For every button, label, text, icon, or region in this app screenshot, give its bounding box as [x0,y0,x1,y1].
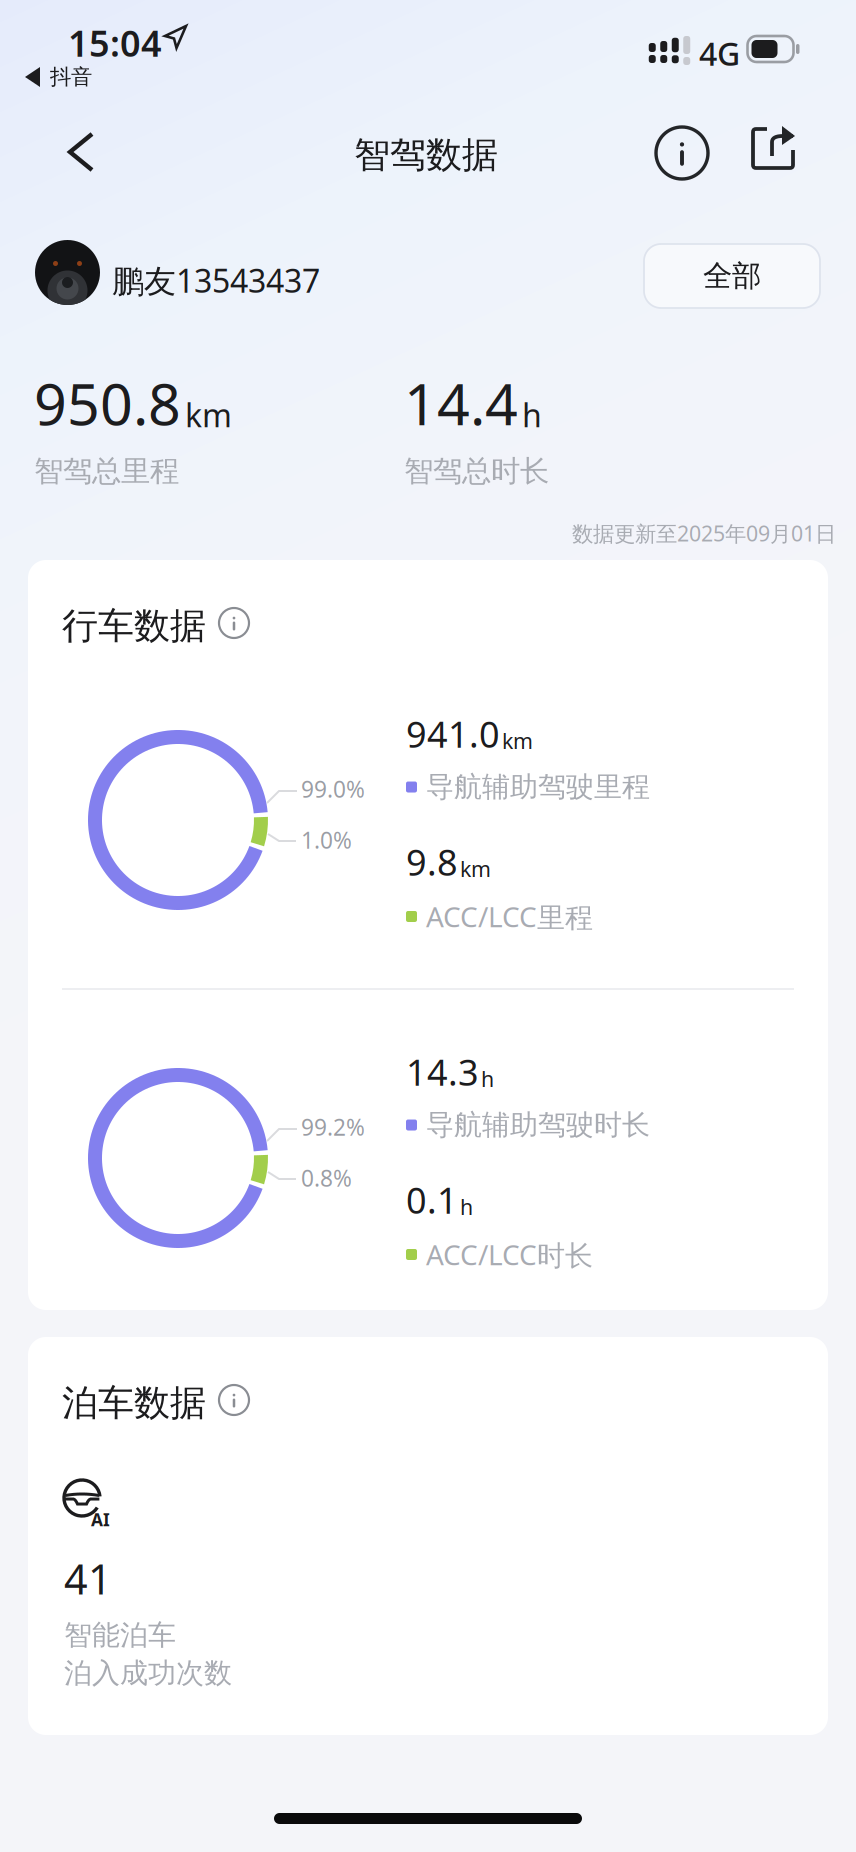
staticText: 0.1 [406,1176,458,1224]
staticText: 泊入成功次数 [64,1656,232,1690]
staticText: 0.8% [301,1163,352,1193]
staticText: 智驾总时长 [404,453,549,489]
staticText: 智驾总里程 [34,453,179,489]
staticText: km [460,854,491,883]
staticText: 行车数据 [62,604,206,648]
staticText: 全部 [703,258,761,294]
staticText: ACC/LCC时长 [426,1236,593,1273]
staticText: h [460,1192,473,1221]
staticText: h [522,394,542,436]
staticText: 99.0% [301,774,365,804]
button[interactable]: Info [641,110,723,196]
staticText: 抖音 [50,64,92,90]
button[interactable]: 全部 [644,244,820,308]
staticText: 4G [699,32,740,74]
staticText: 导航辅助驾驶里程 [426,770,650,804]
staticText: 智驾数据 [354,133,498,177]
staticText: 1.0% [301,825,352,855]
staticText: 15:04 [68,19,162,67]
staticText: 99.2% [301,1112,365,1142]
button[interactable]: 抖音 [24,58,144,96]
staticText: 14.3 [406,1048,479,1096]
staticText: h [481,1064,494,1093]
staticText: 14.4 [404,365,518,441]
staticText: 导航辅助驾驶时长 [426,1108,650,1142]
staticText: 智能泊车 [64,1618,176,1652]
staticText: 41 [64,1551,112,1606]
staticText: ACC/LCC里程 [426,898,593,935]
staticText: AI [91,1508,110,1531]
staticText: km [185,394,232,436]
button[interactable]: Share [734,105,814,191]
button[interactable]: Back [36,107,126,197]
staticText: 数据更新至2025年09月01日 [572,519,836,547]
staticText: 950.8 [34,365,181,441]
staticText: 9.8 [406,838,458,886]
staticText: 941.0 [406,710,500,758]
staticText: km [502,726,533,755]
staticText: 泊车数据 [62,1381,206,1425]
staticText: 鹏友13543437 [112,259,320,301]
